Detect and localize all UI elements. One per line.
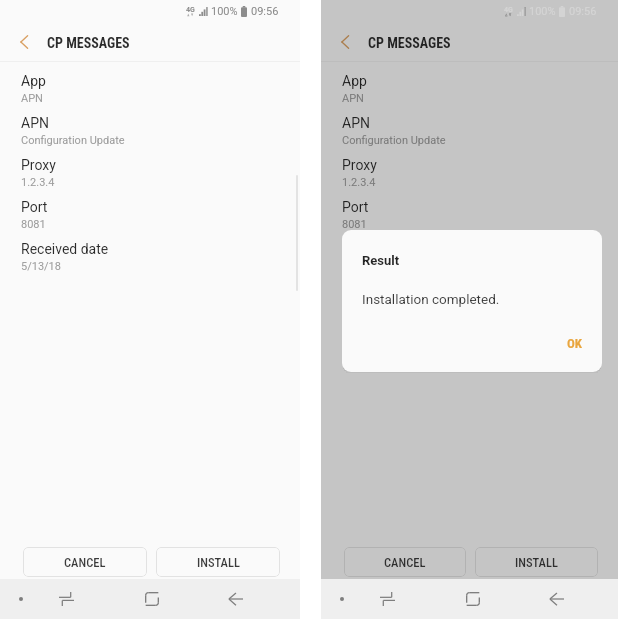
staticText: Installation completed. (362, 291, 500, 307)
staticText: 09:56 (251, 5, 279, 18)
staticText: INSTALL (197, 555, 240, 570)
staticText: 4G (504, 6, 513, 14)
staticText: 5/13/18 (21, 260, 61, 273)
staticText: 1.2.3.4 (342, 176, 376, 189)
staticText: 4G (186, 6, 195, 14)
staticText: Result (362, 253, 400, 268)
staticText: App (21, 73, 46, 89)
button[interactable]: Hide navigation bar (3, 579, 39, 619)
staticText: 8081 (342, 218, 367, 231)
staticText: Port (342, 199, 369, 215)
staticText: APN (21, 92, 43, 105)
staticText: OK (567, 336, 583, 351)
staticText: Received date (21, 241, 109, 257)
staticText: 09:56 (569, 5, 597, 18)
button[interactable]: Port (0, 197, 300, 239)
button[interactable]: App (0, 71, 300, 113)
staticText: 09:56 (569, 5, 597, 18)
button[interactable]: Received date (0, 239, 300, 281)
staticText: APN (21, 115, 49, 131)
staticText: Port (21, 199, 48, 215)
button[interactable]: Navigate up (325, 22, 365, 61)
staticText: 1.2.3.4 (21, 176, 55, 189)
staticText: CP MESSAGES (47, 35, 130, 51)
button[interactable]: APN (0, 113, 300, 155)
button[interactable]: Recent apps (363, 579, 412, 619)
button[interactable]: Home (443, 579, 503, 619)
button[interactable]: Hide navigation bar (324, 579, 360, 619)
staticText: APN (342, 115, 370, 131)
staticText: 4G (504, 6, 513, 14)
staticText: CP MESSAGES (368, 35, 451, 51)
staticText: CANCEL (384, 555, 426, 570)
button[interactable]: Proxy (0, 155, 300, 197)
staticText: INSTALL (515, 555, 558, 570)
button[interactable]: INSTALL (156, 547, 280, 577)
staticText: Configuration Update (342, 134, 446, 147)
staticText: Proxy (342, 157, 377, 173)
staticText: 100% (529, 5, 556, 18)
staticText: 5/13/18 (342, 260, 382, 273)
button[interactable]: Back (205, 579, 265, 619)
button[interactable]: OK (550, 325, 600, 361)
staticText: 100% (529, 5, 556, 18)
button[interactable]: CANCEL (344, 547, 466, 577)
staticText: Proxy (21, 157, 56, 173)
staticText: 8081 (21, 218, 46, 231)
staticText: APN (342, 92, 364, 105)
button[interactable]: INSTALL (475, 547, 598, 577)
button[interactable]: Proxy (321, 155, 618, 197)
button[interactable]: Back (526, 579, 586, 619)
staticText: App (342, 73, 367, 89)
staticText: Received date (342, 241, 430, 257)
button[interactable]: CANCEL (23, 547, 147, 577)
button[interactable]: Recent apps (42, 579, 91, 619)
staticText: 100% (211, 5, 238, 18)
button[interactable]: Port (321, 197, 618, 239)
button[interactable]: App (321, 71, 618, 113)
staticText: Configuration Update (21, 134, 125, 147)
button[interactable]: APN (321, 113, 618, 155)
button[interactable]: Navigate up (4, 22, 44, 61)
button[interactable]: Received date (321, 239, 618, 281)
staticText: CANCEL (64, 555, 106, 570)
button[interactable]: Home (122, 579, 182, 619)
